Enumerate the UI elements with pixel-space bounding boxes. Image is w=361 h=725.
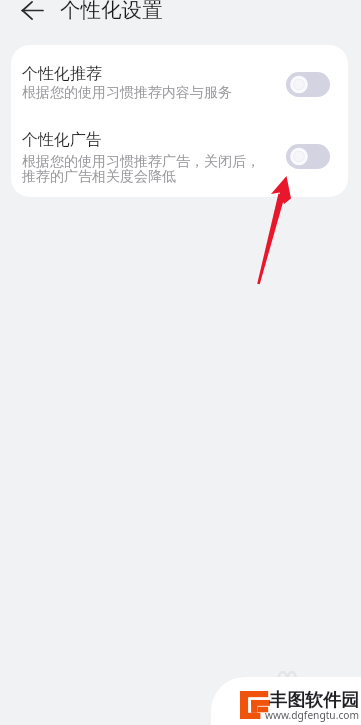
staticText: www.dgfengtu.com [265,708,359,722]
staticText: 根据您的使用习惯推荐内容与服务 [22,84,232,102]
staticText: 推荐的广告相关度会降低 [22,168,176,186]
button[interactable]: 个性化推荐 [11,45,348,118]
button[interactable]: Toggle [286,144,330,169]
staticText: 丰图软件园 [269,689,359,712]
staticText: 个性化设置 [60,0,163,23]
button[interactable]: Back [17,0,47,25]
staticText: 个性化广告 [22,130,102,150]
button[interactable]: Toggle [286,72,330,97]
staticText: 根据您的使用习惯推荐广告，关闭后， [22,153,260,171]
staticText: 个性化推荐 [22,64,102,84]
button[interactable]: 个性化广告 [11,118,348,197]
